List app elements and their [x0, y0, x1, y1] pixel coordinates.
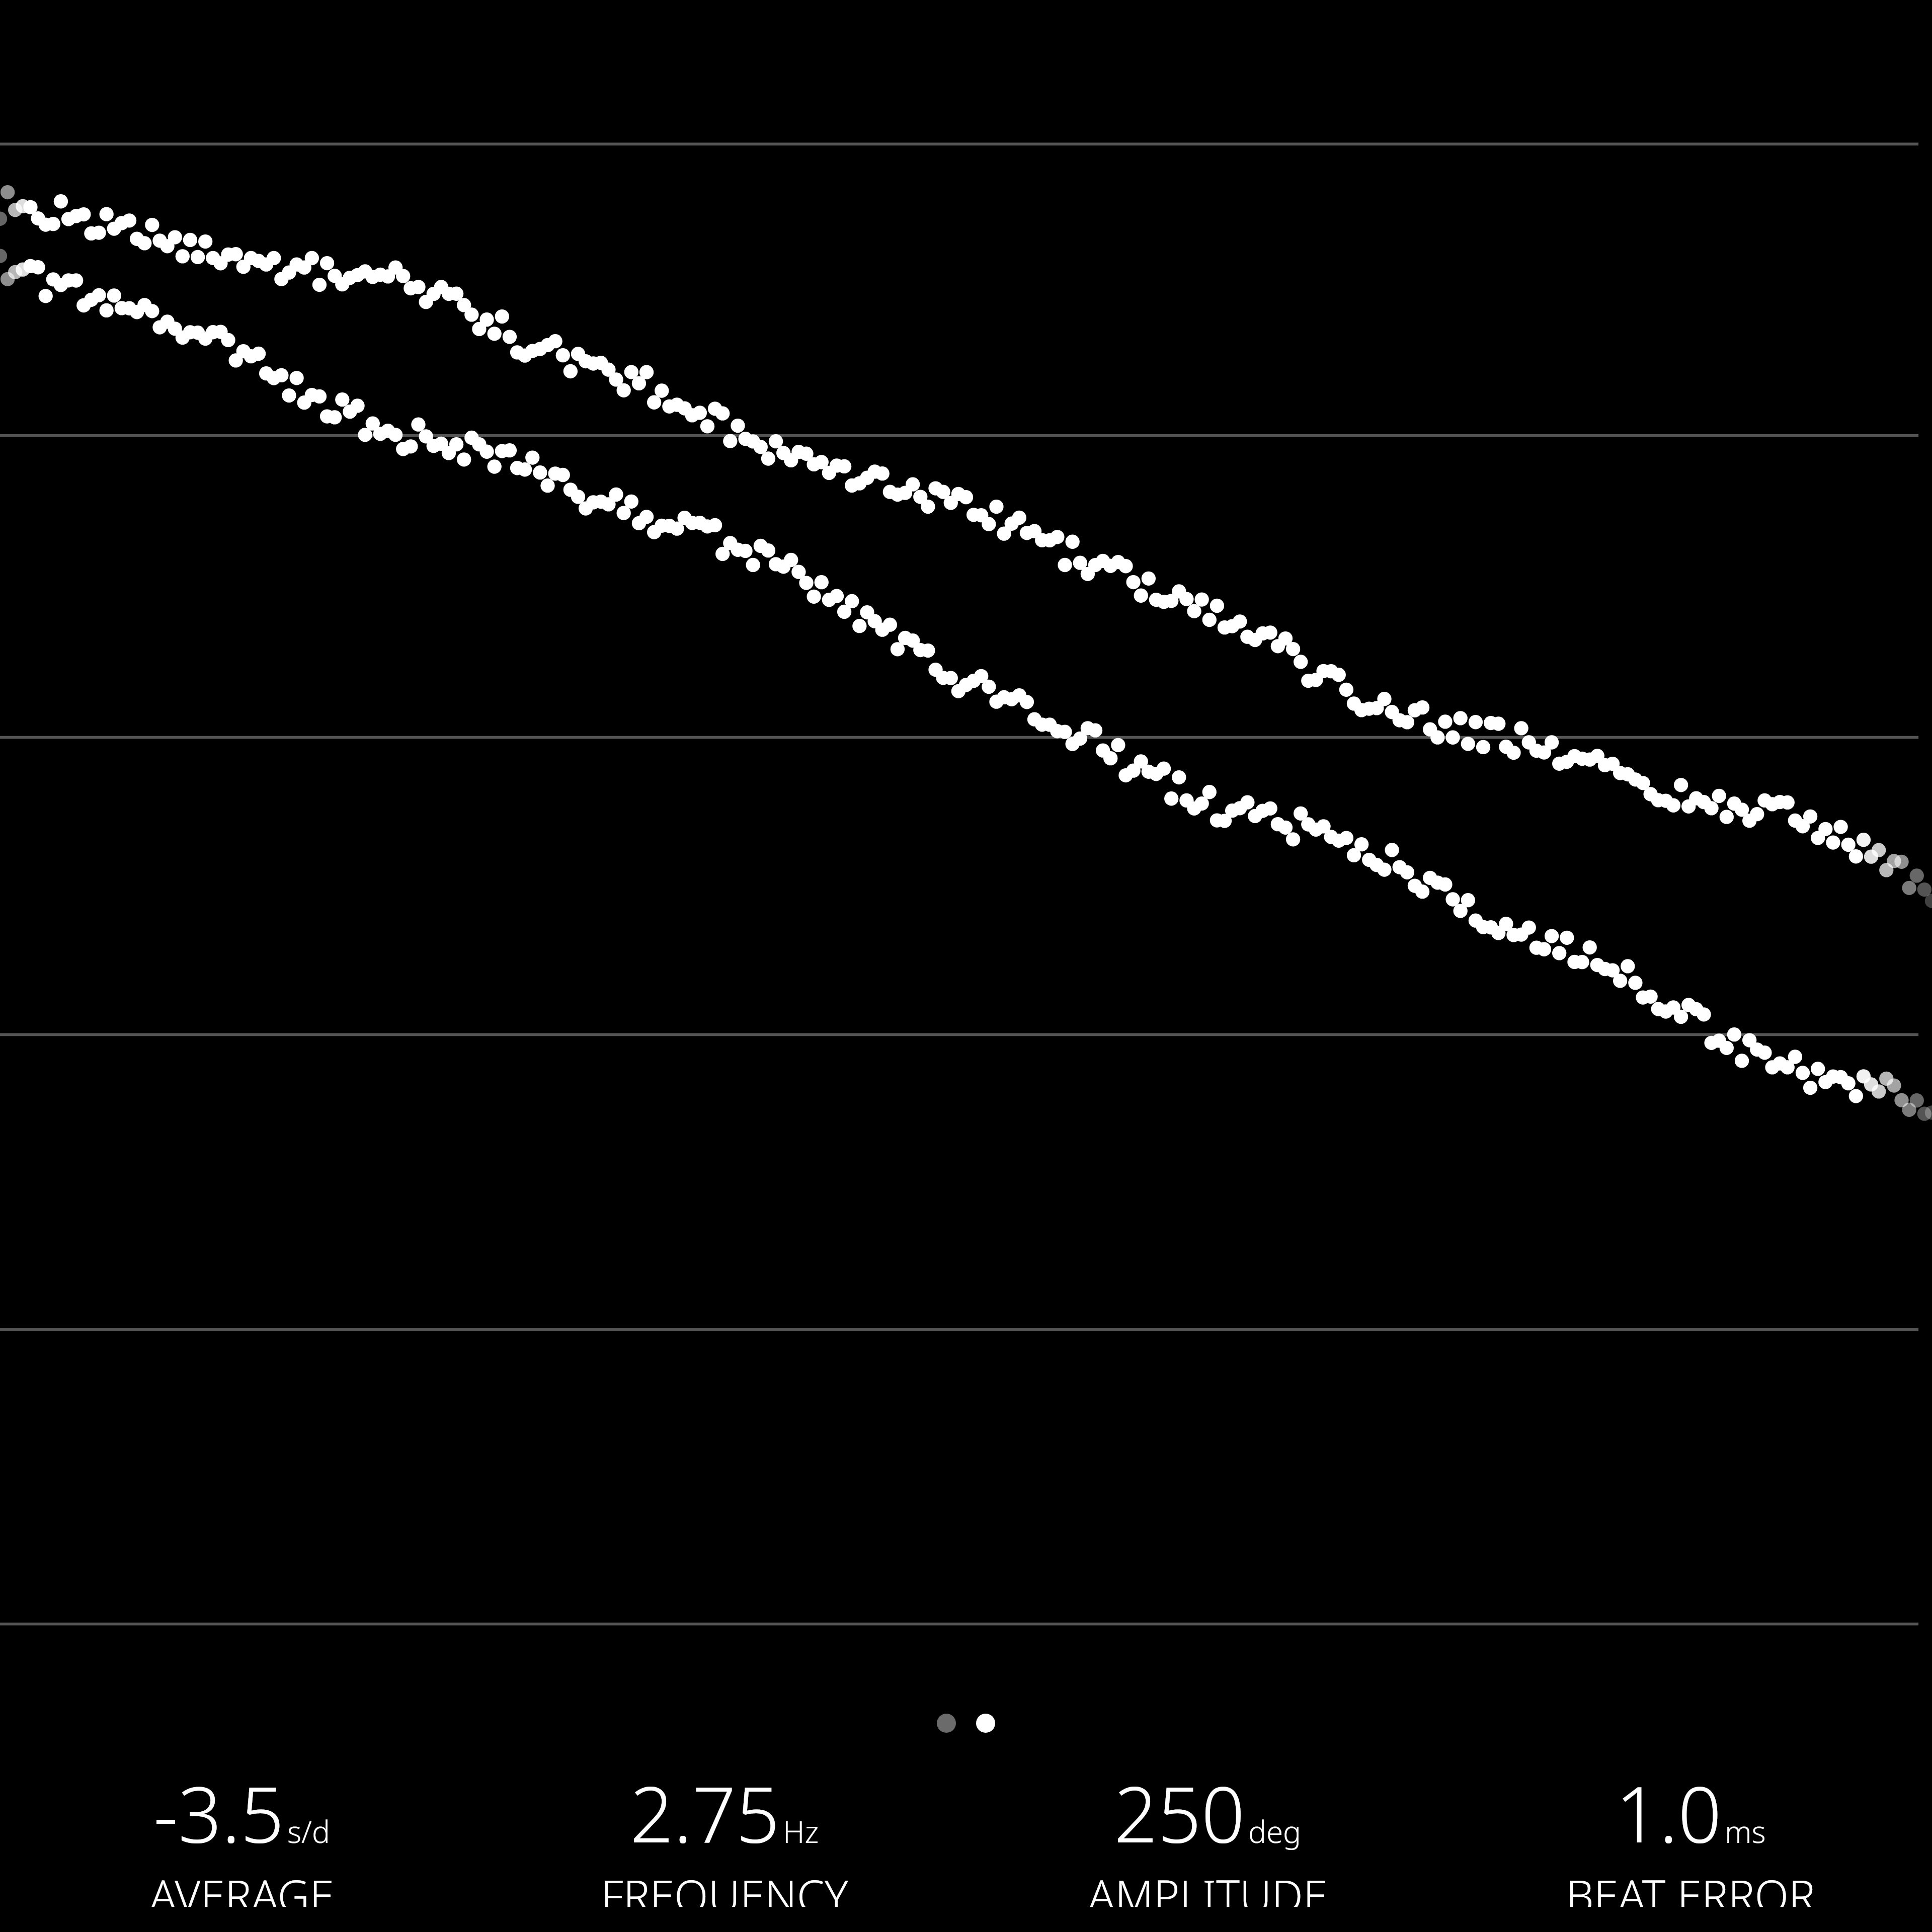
button[interactable]: Page 1 [927, 1704, 966, 1743]
staticText: deg [1248, 1811, 1301, 1852]
staticText: AMPLITUDE [1088, 1865, 1328, 1907]
staticText: 1.0 [1616, 1761, 1722, 1865]
staticText: 2.75 [630, 1761, 780, 1865]
staticText: AVERAGE [149, 1865, 334, 1907]
staticText: BEAT ERROR [1566, 1865, 1815, 1907]
staticText: s/d [287, 1811, 330, 1852]
staticText: Hz [783, 1811, 819, 1852]
staticText: 250 [1114, 1761, 1245, 1865]
staticText: FREQUENCY [601, 1865, 848, 1907]
button[interactable]: Rate trace graph [0, 0, 1932, 1685]
staticText: -3.5 [153, 1761, 284, 1865]
button[interactable]: 2.75 [483, 1761, 966, 1907]
button[interactable]: 1.0 [1449, 1761, 1932, 1907]
staticText: ms [1725, 1811, 1766, 1852]
button[interactable]: 250 [966, 1761, 1449, 1907]
button[interactable]: Page 2, selected [966, 1704, 1005, 1743]
button[interactable]: -3.5 [0, 1761, 483, 1907]
